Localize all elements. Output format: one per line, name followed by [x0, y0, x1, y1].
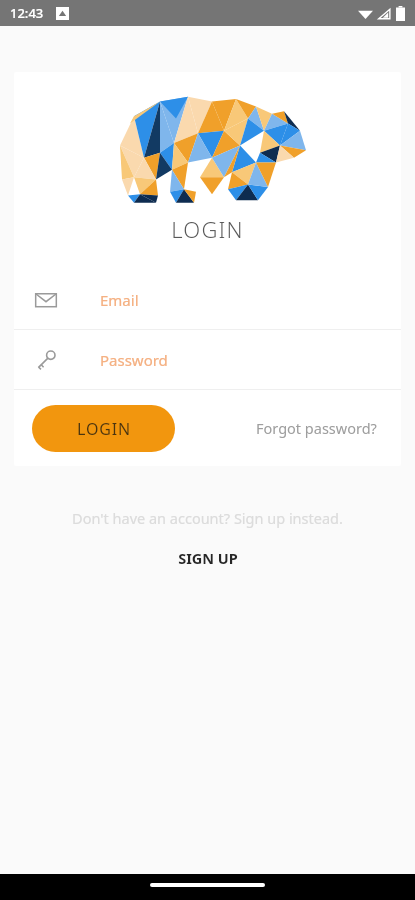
- button[interactable]: LOGIN: [32, 405, 175, 452]
- staticText: Don't have an account? Sign up instead.: [0, 508, 415, 528]
- staticText: Forgot password?: [256, 418, 377, 438]
- button[interactable]: Forgot password?: [250, 412, 383, 444]
- button[interactable]: Password: [14, 330, 401, 389]
- staticText: SIGN UP: [178, 548, 238, 568]
- button[interactable]: SIGN UP: [164, 544, 252, 572]
- staticText: LOGIN: [77, 418, 131, 440]
- other: Home gesture: [150, 883, 265, 887]
- other: Email: [34, 288, 58, 312]
- other: Password: [34, 348, 58, 372]
- button[interactable]: Email: [14, 270, 401, 329]
- staticText: Password: [100, 350, 168, 370]
- staticText: 12:43: [10, 4, 44, 22]
- staticText: LOGIN: [14, 214, 401, 244]
- staticText: Email: [100, 290, 139, 310]
